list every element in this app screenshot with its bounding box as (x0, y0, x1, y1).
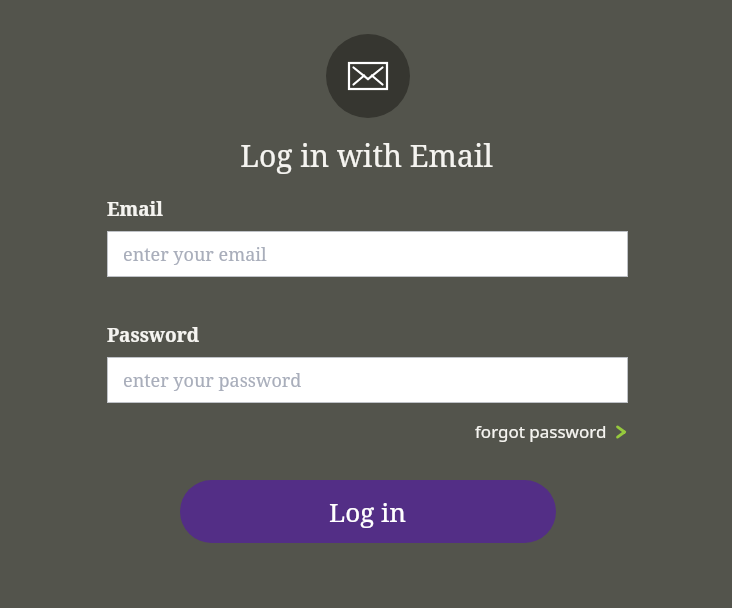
button[interactable]: forgot password (473, 417, 628, 446)
button[interactable]: Log in (180, 480, 556, 543)
staticText: Log in (329, 494, 407, 529)
staticText: Log in with Email (240, 135, 493, 176)
other: Email (326, 34, 410, 118)
button[interactable]: enter your email (107, 231, 628, 277)
staticText: Password (107, 322, 199, 348)
staticText: enter your email (123, 242, 267, 267)
staticText: Email (107, 196, 163, 222)
staticText: forgot password (475, 420, 607, 443)
button[interactable]: enter your password (107, 357, 628, 403)
staticText: enter your password (123, 368, 302, 393)
